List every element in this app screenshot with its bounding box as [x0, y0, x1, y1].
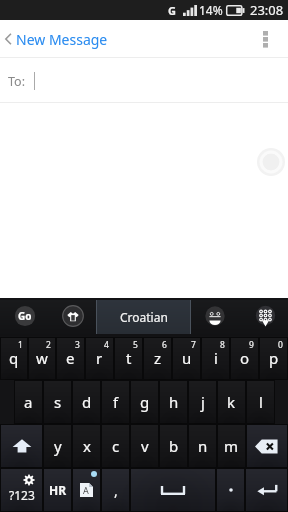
button[interactable]: o	[231, 338, 258, 379]
button[interactable]: p	[260, 338, 287, 379]
staticText: k	[227, 392, 236, 412]
staticText: t	[126, 348, 132, 368]
staticText: q	[9, 348, 19, 368]
button[interactable]: s	[44, 381, 71, 423]
button[interactable]: f	[102, 381, 129, 423]
button[interactable]: l	[247, 381, 274, 423]
button[interactable]: ,	[102, 469, 129, 511]
staticText: 4	[104, 339, 109, 351]
button[interactable]: c	[102, 425, 129, 467]
button[interactable]: u	[173, 338, 200, 379]
staticText: 3	[75, 339, 80, 351]
staticText: Go	[18, 309, 32, 323]
button[interactable]: q	[1, 338, 27, 379]
staticText: i	[214, 348, 218, 368]
button[interactable]	[217, 469, 244, 511]
button[interactable]	[1, 425, 42, 467]
button[interactable]: i	[202, 338, 229, 379]
button[interactable]	[246, 469, 287, 511]
staticText: s	[54, 392, 62, 412]
button[interactable]: k	[218, 381, 245, 423]
staticText: c	[112, 436, 120, 456]
staticText: l	[259, 392, 263, 412]
staticText: d	[82, 392, 92, 412]
button[interactable]: n	[189, 425, 216, 467]
button[interactable]: d	[73, 381, 100, 423]
button[interactable]: a	[15, 381, 42, 423]
button[interactable]: z	[144, 338, 171, 379]
staticText: A	[83, 484, 89, 496]
button[interactable]: r	[86, 338, 113, 379]
staticText: n	[198, 436, 208, 456]
button[interactable]: Go Keyboard	[14, 305, 36, 327]
button[interactable]: Croatian	[96, 300, 191, 334]
button[interactable]: w	[29, 338, 55, 379]
staticText: 5	[133, 339, 138, 351]
staticText: y	[54, 436, 62, 456]
button[interactable]: A	[73, 469, 100, 511]
button[interactable]: ?123	[1, 469, 42, 511]
staticText: p	[269, 348, 279, 368]
staticText: G	[168, 3, 176, 18]
button[interactable]	[131, 469, 215, 511]
staticText: HR	[49, 482, 67, 498]
button[interactable]: New Message	[0, 20, 118, 58]
button[interactable]: More options	[243, 20, 288, 58]
staticText: z	[154, 348, 162, 368]
staticText: 7	[191, 339, 196, 351]
staticText: b	[169, 436, 179, 456]
staticText: e	[66, 348, 75, 368]
staticText: New Message	[16, 30, 108, 49]
button[interactable]: t	[115, 338, 142, 379]
staticText: v	[141, 436, 149, 456]
button[interactable]: Theme	[62, 305, 84, 327]
button[interactable]: e	[57, 338, 84, 379]
button[interactable]: HR	[44, 469, 71, 511]
button[interactable]: y	[44, 425, 71, 467]
staticText: 2	[46, 339, 51, 351]
staticText: w	[36, 348, 48, 368]
button[interactable]: x	[73, 425, 100, 467]
staticText: 23:08	[250, 1, 284, 19]
staticText: 9	[249, 339, 254, 351]
button[interactable]: h	[160, 381, 187, 423]
staticText: m	[224, 436, 239, 456]
staticText: 6	[162, 339, 167, 351]
staticText: ,	[114, 481, 118, 500]
button[interactable]: j	[189, 381, 216, 423]
button[interactable]: m	[218, 425, 245, 467]
staticText: ?123	[9, 487, 35, 503]
staticText: Croatian	[120, 309, 168, 325]
button[interactable]: v	[131, 425, 158, 467]
staticText: 14%	[199, 2, 223, 18]
staticText: r	[96, 348, 103, 368]
staticText: o	[240, 348, 250, 368]
button[interactable]: b	[160, 425, 187, 467]
staticText: 8	[220, 339, 225, 351]
staticText: To:	[8, 73, 25, 90]
button[interactable]: Keypad	[254, 304, 277, 327]
staticText: 0	[278, 339, 283, 351]
button[interactable]: Emoji	[204, 305, 226, 327]
button[interactable]: g	[131, 381, 158, 423]
staticText: a	[24, 392, 33, 412]
staticText: h	[169, 392, 179, 412]
button[interactable]	[247, 425, 287, 467]
staticText: x	[83, 436, 91, 456]
staticText: j	[201, 392, 205, 412]
staticText: 1	[18, 339, 23, 351]
staticText: g	[140, 392, 150, 412]
staticText: f	[113, 392, 119, 412]
staticText: u	[182, 348, 192, 368]
